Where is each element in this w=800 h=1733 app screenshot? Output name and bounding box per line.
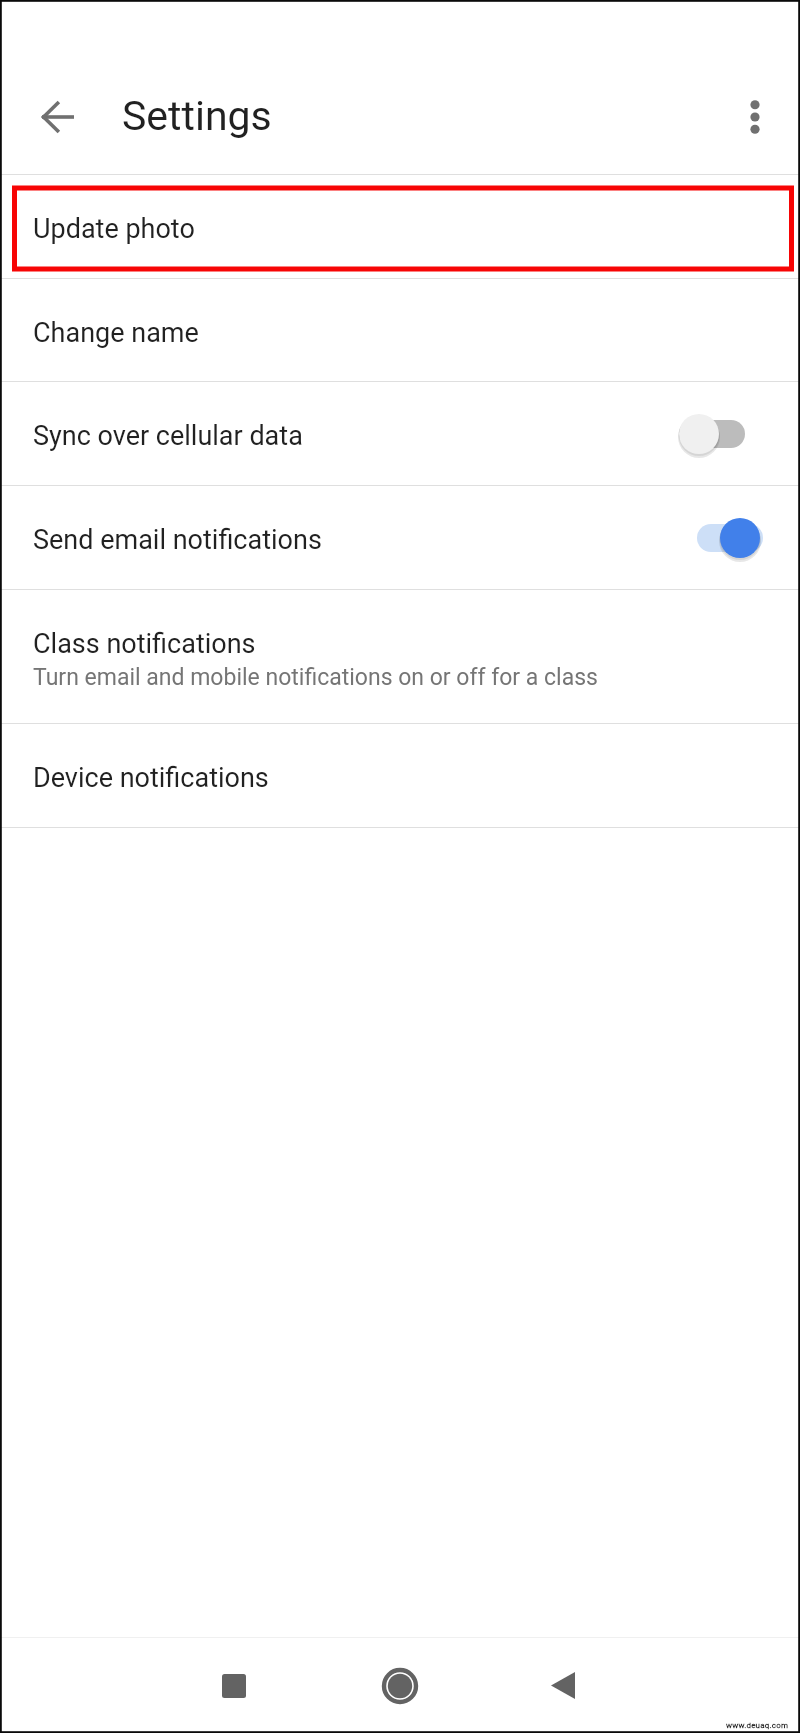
button[interactable]: Send email notifications [0,486,800,589]
staticText: Send email notifications [33,524,679,556]
button[interactable]: Recent apps [178,1638,290,1733]
staticText: Update photo [33,213,195,245]
staticText: Turn email and mobile notifications on o… [33,664,598,691]
staticText: Sync over cellular data [33,420,679,452]
button[interactable]: More options [721,83,789,151]
staticText: Device notifications [33,762,269,794]
button[interactable]: Sync over cellular data [0,382,800,485]
button[interactable]: Home [344,1638,456,1733]
staticText: www.deuaq.com [726,1721,789,1730]
button[interactable]: Change name [0,279,800,381]
button[interactable]: Update photo [0,175,800,278]
staticText: Class notifications [33,628,256,660]
button[interactable]: Navigate up [17,77,97,157]
button[interactable]: Device notifications [0,724,800,827]
staticText: Settings [122,92,272,140]
button[interactable]: Back [507,1638,619,1733]
button[interactable]: Class notifications [0,590,800,723]
staticText: Change name [33,317,199,349]
